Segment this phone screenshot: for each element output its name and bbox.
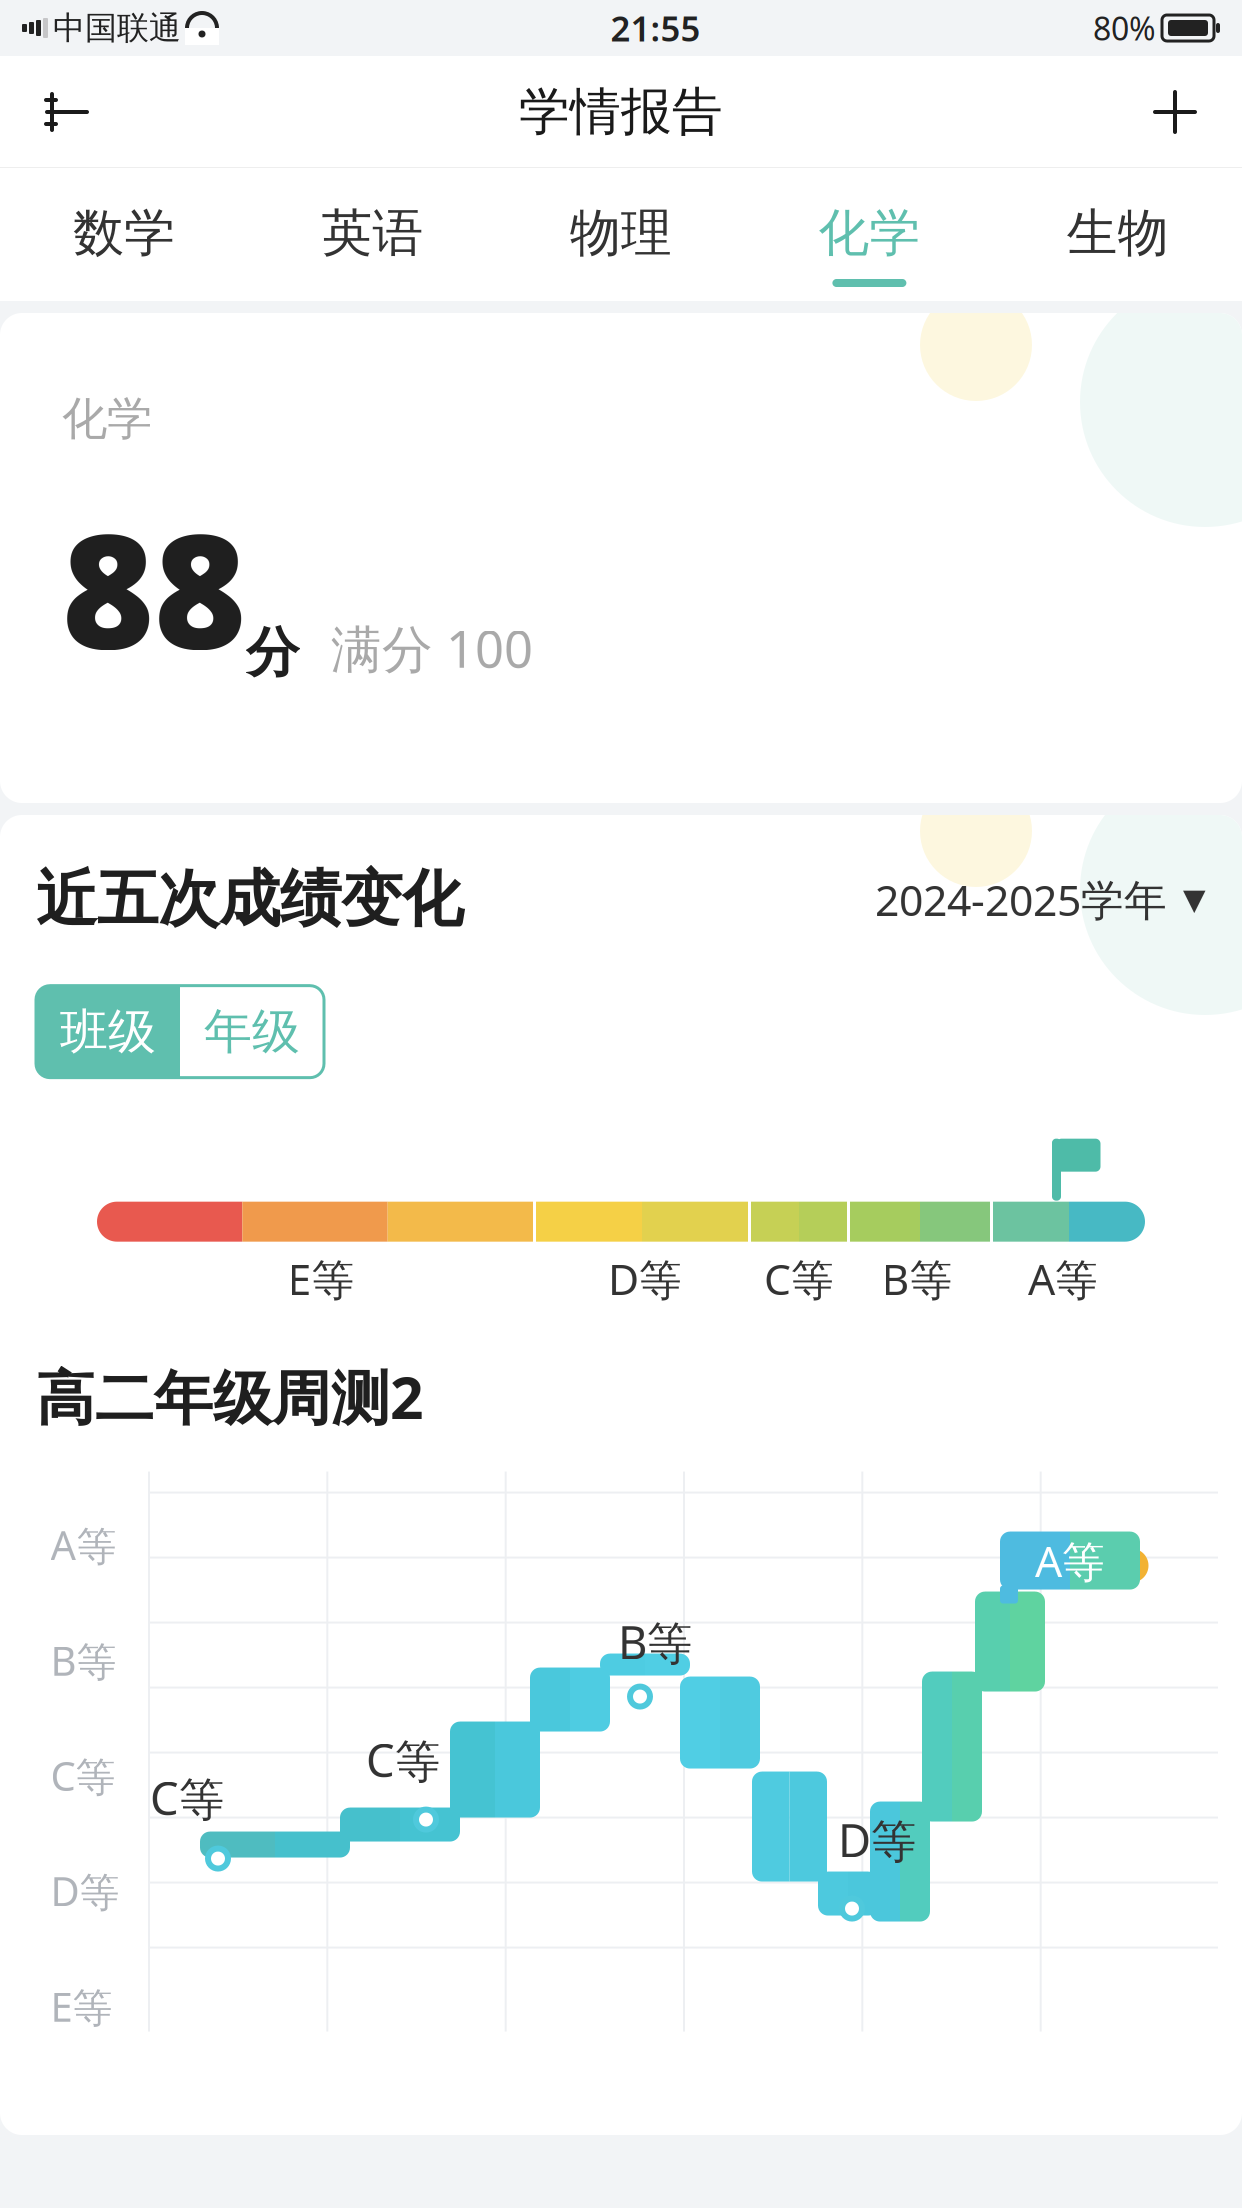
staticText: 88 — [62, 483, 246, 692]
staticText: C等 — [366, 1730, 440, 1790]
button[interactable]: 返回 — [24, 69, 110, 155]
staticText: 班级 — [60, 1002, 156, 1061]
staticText: A等 — [1028, 1250, 1098, 1307]
button[interactable]: 添加 — [1132, 69, 1218, 155]
staticText: D等 — [838, 1810, 916, 1870]
staticText: B等 — [881, 1250, 952, 1307]
staticText: 化学 — [818, 202, 920, 264]
staticText: 高二年级周测2 — [36, 1358, 424, 1436]
staticText: 数学 — [73, 202, 175, 264]
staticText: C等 — [764, 1250, 834, 1307]
button[interactable]: 班级 — [36, 986, 180, 1078]
staticText: C等 — [50, 1749, 115, 1802]
staticText: 近五次成绩变化 — [36, 862, 463, 937]
button[interactable]: 2024-2025学年 — [875, 861, 1206, 938]
button[interactable]: 数学 — [0, 168, 248, 301]
staticText: D等 — [608, 1250, 682, 1307]
staticText: B等 — [50, 1634, 116, 1687]
staticText: 满分 100 — [331, 614, 533, 682]
staticText: B等 — [618, 1612, 692, 1672]
staticText: A等 — [1035, 1532, 1105, 1589]
staticText: C等 — [150, 1768, 224, 1828]
staticText: 生物 — [1067, 202, 1169, 264]
staticText: 2024-2025学年 — [875, 871, 1167, 928]
staticText: 物理 — [570, 202, 672, 264]
staticText: E等 — [287, 1250, 354, 1307]
button[interactable]: 物理 — [497, 168, 745, 301]
staticText: 21:55 — [610, 5, 700, 51]
staticText: 分 — [246, 620, 299, 686]
staticText: A等 — [50, 1518, 116, 1572]
staticText: 80% — [1093, 7, 1156, 49]
button[interactable]: 英语 — [248, 168, 497, 301]
staticText: 化学 — [62, 391, 152, 447]
button[interactable]: 年级 — [180, 986, 324, 1078]
staticText: 英语 — [322, 202, 424, 264]
staticText: D等 — [50, 1864, 119, 1917]
button[interactable]: 生物 — [994, 168, 1242, 301]
staticText: 年级 — [204, 1002, 300, 1061]
staticText: 中国联通 — [53, 8, 181, 48]
staticText: 学情报告 — [519, 81, 723, 143]
staticText: E等 — [50, 1980, 112, 2033]
staticText: ▼ — [1183, 883, 1206, 916]
button[interactable]: 化学 — [745, 168, 994, 301]
